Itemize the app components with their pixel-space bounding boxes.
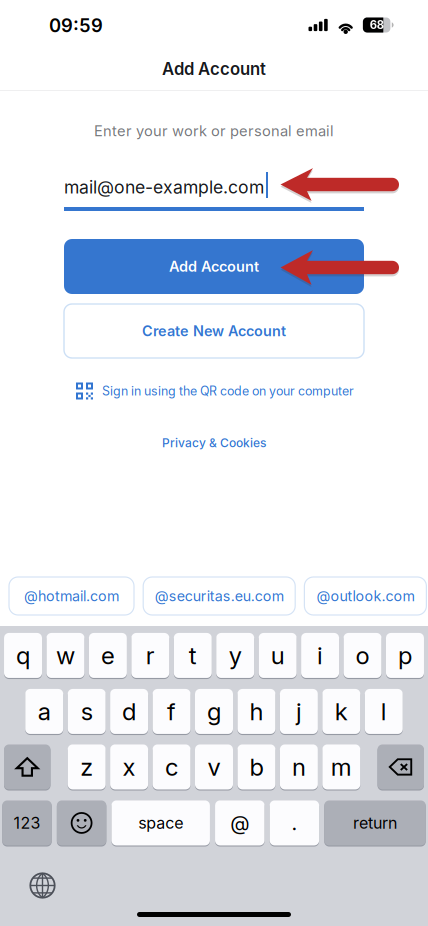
button[interactable]: u (259, 633, 297, 679)
staticText: x (123, 752, 136, 781)
staticText: Add Account (162, 59, 266, 79)
button[interactable]: d (110, 689, 148, 735)
staticText: z (80, 752, 93, 781)
button[interactable]: b (237, 744, 275, 791)
button[interactable]: x (110, 744, 148, 791)
button[interactable]: . (270, 800, 319, 847)
staticText: 68 (370, 18, 384, 32)
button[interactable]: Create New Account (64, 304, 364, 358)
button[interactable]: Delete (377, 744, 424, 791)
button[interactable]: f (153, 689, 191, 735)
button[interactable]: s (68, 689, 106, 735)
staticText: i (317, 641, 323, 670)
button[interactable]: Shift (4, 744, 50, 791)
staticText: d (122, 697, 136, 726)
button[interactable]: @hotmail.com (9, 577, 134, 615)
button[interactable]: c (153, 744, 191, 791)
staticText: w (56, 641, 75, 670)
button[interactable]: Privacy & Cookies (162, 436, 266, 450)
button[interactable]: i (301, 633, 339, 679)
staticText: t (189, 641, 197, 670)
staticText: Sign in using the QR code on your comput… (102, 383, 354, 398)
staticText: mail@one-example.com (64, 176, 264, 198)
button[interactable]: @outlook.com (304, 577, 426, 615)
button[interactable]: Sign in using the QR code on your comput… (76, 382, 366, 399)
staticText: @ (230, 811, 249, 835)
staticText: 123 (13, 813, 40, 833)
button[interactable]: n (280, 744, 318, 791)
staticText: n (292, 752, 306, 781)
staticText: b (249, 752, 263, 781)
button[interactable]: 123 (2, 800, 52, 847)
staticText: m (331, 752, 352, 781)
staticText: o (355, 641, 369, 670)
button[interactable]: space (111, 800, 210, 847)
button[interactable]: Add Account (64, 239, 364, 294)
staticText: v (207, 752, 220, 781)
staticText: p (398, 641, 412, 670)
staticText: . (291, 811, 297, 835)
button[interactable]: w (46, 633, 84, 679)
button[interactable]: t (174, 633, 212, 679)
staticText: @hotmail.com (24, 587, 119, 605)
button[interactable]: m (322, 744, 360, 791)
staticText: space (138, 813, 183, 833)
button[interactable]: @ (215, 800, 265, 847)
staticText: @outlook.com (316, 587, 414, 605)
staticText: c (165, 752, 178, 781)
button[interactable]: a (25, 689, 63, 735)
staticText: g (207, 697, 221, 726)
button[interactable]: g (195, 689, 233, 735)
staticText: l (381, 697, 387, 726)
staticText: return (353, 813, 397, 833)
staticText: e (101, 641, 115, 670)
staticText: a (38, 697, 51, 726)
staticText: u (271, 641, 285, 670)
button[interactable]: Switch keyboard (29, 872, 55, 898)
staticText: Privacy & Cookies (162, 436, 266, 450)
button[interactable]: o (343, 633, 381, 679)
button[interactable]: Emoji (57, 800, 106, 847)
button[interactable]: z (68, 744, 106, 791)
staticText: h (249, 697, 263, 726)
staticText: q (16, 641, 30, 670)
staticText: @securitas.eu.com (155, 587, 284, 605)
button[interactable]: y (216, 633, 254, 679)
staticText: Add Account (169, 258, 259, 275)
staticText: k (335, 697, 348, 726)
staticText: s (81, 697, 93, 726)
button[interactable]: q (4, 633, 42, 679)
button[interactable]: v (195, 744, 233, 791)
button[interactable]: j (280, 689, 318, 735)
staticText: j (296, 697, 302, 726)
staticText: f (167, 697, 176, 726)
button[interactable]: r (131, 633, 169, 679)
button[interactable]: @securitas.eu.com (143, 577, 295, 615)
button[interactable]: l (365, 689, 403, 735)
staticText: 09:59 (49, 14, 103, 37)
staticText: y (229, 641, 242, 670)
staticText: Create New Account (142, 322, 286, 340)
button[interactable]: return (324, 800, 426, 847)
button[interactable]: e (89, 633, 127, 679)
staticText: Enter your work or personal email (94, 122, 334, 140)
button[interactable]: h (237, 689, 275, 735)
staticText: r (146, 641, 155, 670)
button[interactable]: k (322, 689, 360, 735)
button[interactable]: p (386, 633, 424, 679)
